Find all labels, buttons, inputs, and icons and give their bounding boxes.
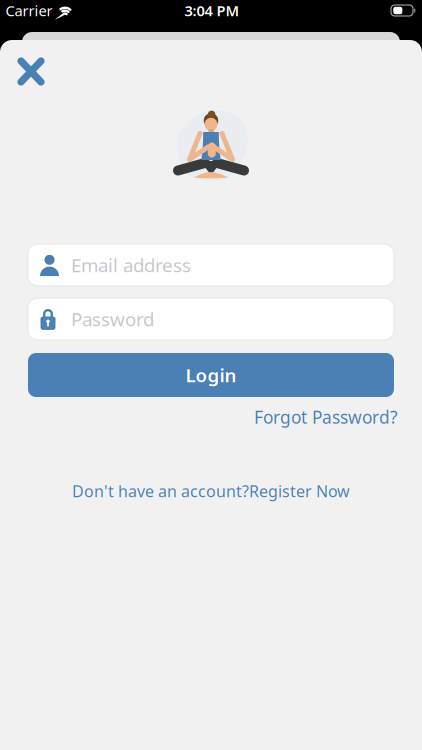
staticText: Don't have an account?Register Now [72,480,350,502]
button[interactable]: Close [18,58,44,85]
staticText: 3:04 PM [184,1,239,20]
staticText: Login [185,363,236,387]
staticText: Carrier [5,1,52,20]
staticText: Password [71,307,154,331]
button[interactable]: Password [28,298,394,340]
staticText: Forgot Password? [254,405,398,428]
button[interactable]: Don't have an account?Register Now [72,480,350,502]
button[interactable]: Email address [28,244,394,286]
button[interactable]: Forgot Password? [254,405,398,428]
button[interactable]: Login [28,353,394,397]
staticText: Email address [71,253,191,277]
